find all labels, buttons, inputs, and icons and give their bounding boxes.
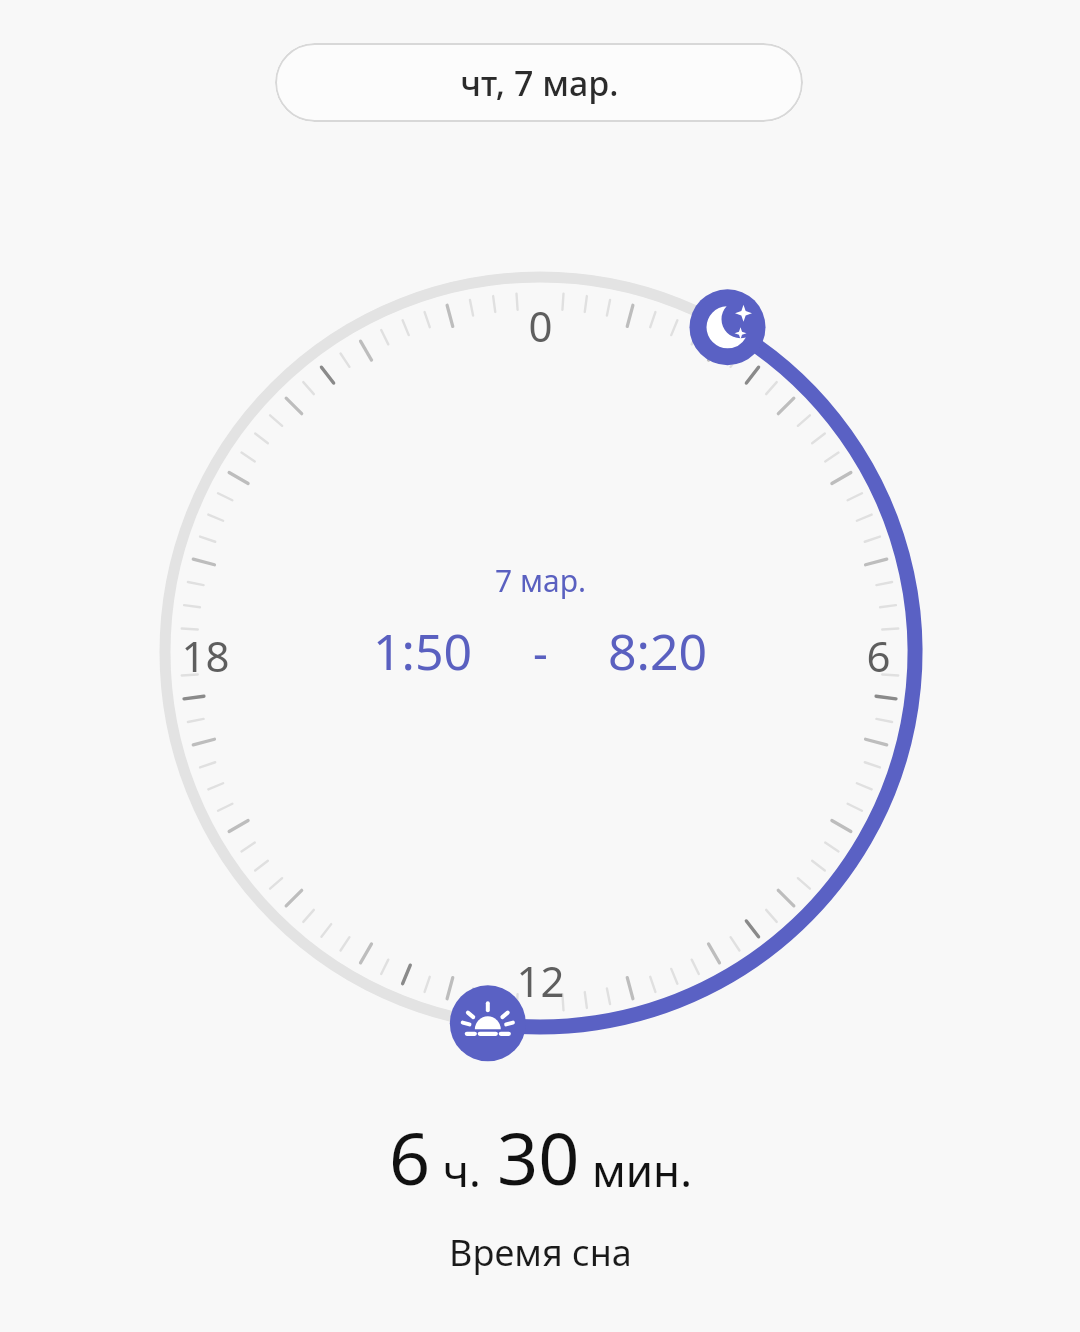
staticText: 6 [866,627,891,684]
staticText: 1:50 [373,617,473,685]
staticText: 0 [528,297,553,354]
button[interactable]: чт, 7 мар. [275,43,803,122]
staticText: 18 [181,627,230,684]
staticText: 30 [497,1108,580,1206]
staticText: мин. [592,1140,692,1200]
staticText: 7 мар. [495,560,586,601]
staticText: 8:20 [608,617,708,685]
staticText: ч. [443,1140,481,1200]
staticText: 6 [389,1108,431,1206]
button[interactable]: Sleep time dial [140,252,940,1052]
staticText: - [533,620,548,683]
staticText: 12 [516,952,565,1009]
staticText: чт, 7 мар. [460,60,619,106]
staticText: Время сна [449,1228,632,1277]
